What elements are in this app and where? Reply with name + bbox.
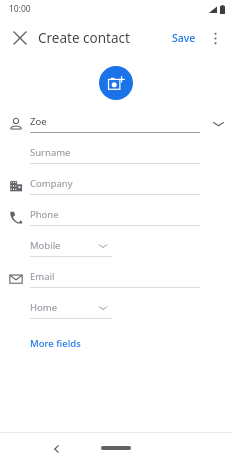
button[interactable]: Surname xyxy=(30,145,200,164)
button[interactable]: Home xyxy=(99,436,133,460)
button[interactable]: More fields xyxy=(26,334,85,353)
staticText: Create contact xyxy=(38,29,130,47)
staticText: Mobile xyxy=(30,239,61,252)
button[interactable]: Mobile xyxy=(30,238,112,257)
staticText: Save xyxy=(172,31,196,45)
staticText: Home xyxy=(30,301,58,314)
button[interactable]: Add photo xyxy=(99,66,133,100)
button[interactable]: Home xyxy=(30,300,112,319)
button[interactable]: Save xyxy=(167,27,201,49)
button[interactable]: Close xyxy=(4,22,36,54)
button[interactable]: Back xyxy=(44,437,68,461)
staticText: 10:00 xyxy=(9,3,31,15)
button[interactable]: More options xyxy=(201,24,229,52)
staticText: Email xyxy=(30,270,55,283)
button[interactable]: Company xyxy=(30,176,200,195)
staticText: Phone xyxy=(30,208,59,221)
staticText: Zoe xyxy=(30,115,47,128)
button[interactable]: Expand name fields xyxy=(209,115,227,133)
staticText: More fields xyxy=(30,337,81,350)
button[interactable]: Email xyxy=(30,269,200,288)
button[interactable]: Phone xyxy=(30,207,200,226)
staticText: Company xyxy=(30,177,73,190)
button[interactable]: Zoe xyxy=(30,114,200,133)
staticText: Surname xyxy=(30,146,71,159)
